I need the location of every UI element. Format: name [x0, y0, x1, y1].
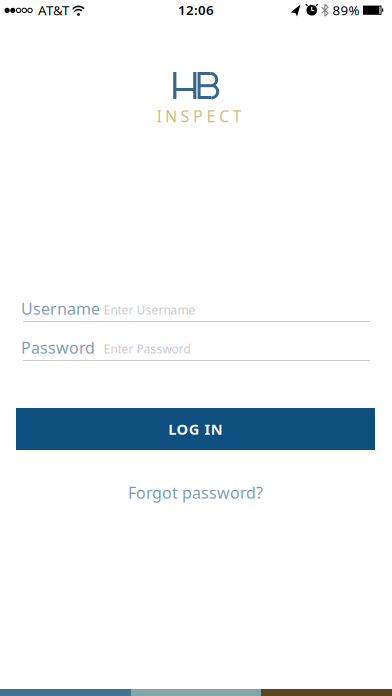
- staticText: Enter Username: [103, 302, 195, 318]
- staticText: 89%: [332, 1, 359, 19]
- button[interactable]: Username: [0, 296, 392, 324]
- button[interactable]: Forgot password?: [128, 482, 263, 503]
- staticText: AT&T: [38, 1, 69, 19]
- staticText: INSPECT: [156, 105, 241, 127]
- staticText: Forgot password?: [128, 482, 263, 503]
- staticText: 12:06: [178, 1, 214, 19]
- staticText: Enter Password: [103, 341, 190, 357]
- button[interactable]: LOG IN: [16, 408, 375, 450]
- staticText: LOG IN: [168, 419, 223, 439]
- staticText: Username: [21, 298, 100, 319]
- staticText: Password: [21, 337, 95, 358]
- button[interactable]: Password: [0, 335, 392, 363]
